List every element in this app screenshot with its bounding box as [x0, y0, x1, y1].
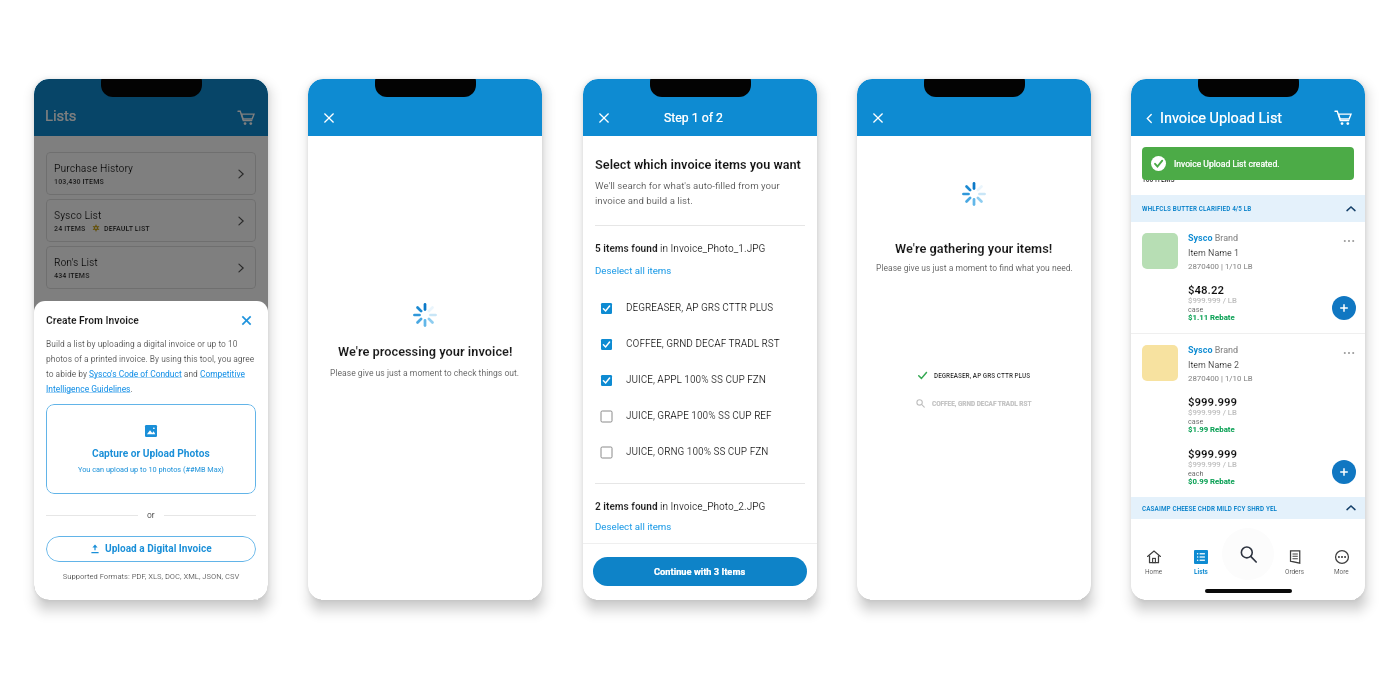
- staticText: COFFEE, GRND DECAF TRADL RST: [626, 338, 780, 350]
- staticText: 2870400 | 1/10 LB: [1188, 262, 1253, 271]
- staticText: $1.11 Rebate: [1188, 313, 1235, 322]
- staticText: 24 ITEMS: [54, 224, 86, 232]
- staticText: Item Name 1: [1188, 248, 1239, 258]
- staticText: 5 items found in Invoice_Photo_1.JPG: [595, 243, 766, 255]
- button[interactable]: Cart: [235, 107, 257, 129]
- button[interactable]: JUICE, ORNG 100% SS CUP FZN: [595, 434, 805, 470]
- staticText: Upload a Digital Invoice: [105, 543, 212, 555]
- button[interactable]: Add to cart: [1332, 296, 1356, 320]
- button[interactable]: Ron's List: [46, 246, 256, 289]
- staticText: case: [1188, 417, 1204, 425]
- staticText: JUICE, APPL 100% SS CUP FZN: [626, 374, 766, 386]
- button[interactable]: Add to cart: [1332, 460, 1356, 484]
- staticText: COFFEE, GRND DECAF TRADL RST: [932, 400, 1032, 408]
- staticText: $999.999 / LB: [1188, 296, 1237, 305]
- button[interactable]: Close: [591, 105, 617, 131]
- staticText: 434 ITEMS: [54, 271, 90, 279]
- button[interactable]: Lists: [1177, 540, 1224, 586]
- staticText: DEGREASER, AP GRS CTTR PLUS: [626, 302, 774, 314]
- button[interactable]: Sysco Brand: [1131, 334, 1365, 497]
- button[interactable]: Orders: [1271, 540, 1318, 586]
- staticText: Lists: [45, 107, 77, 124]
- staticText: Invoice Upload List: [1160, 110, 1283, 127]
- staticText: $999.999 / LB: [1188, 460, 1237, 469]
- button[interactable]: Search: [1222, 528, 1274, 580]
- staticText: case: [1188, 305, 1204, 313]
- staticText: Step 1 of 2: [664, 111, 724, 125]
- staticText: Orders: [1285, 568, 1304, 576]
- staticText: each: [1188, 469, 1204, 477]
- staticText: Select which invoice items you want: [595, 157, 801, 172]
- staticText: 2 items found in Invoice_Photo_2.JPG: [595, 501, 766, 513]
- button[interactable]: Home: [1131, 540, 1177, 586]
- button[interactable]: DEGREASER, AP GRS CTTR PLUS: [595, 290, 805, 326]
- staticText: We'll search for what's auto-filled from…: [595, 180, 780, 206]
- staticText: Lists: [1194, 568, 1208, 576]
- staticText: Invoice Upload List created.: [1174, 159, 1280, 169]
- button[interactable]: Capture or Upload Photos: [46, 404, 256, 494]
- staticText: Ron's List: [54, 256, 98, 268]
- staticText: Home: [1145, 568, 1163, 576]
- staticText: WHLFCLS BUTTER CLARIFIED 4/5 LB: [1142, 205, 1252, 212]
- button[interactable]: Upload a Digital Invoice: [46, 536, 256, 562]
- staticText: Please give us just a moment to find wha…: [876, 263, 1073, 273]
- staticText: Capture or Upload Photos: [92, 448, 210, 460]
- button[interactable]: Purchase History: [46, 152, 256, 195]
- staticText: $0.99 Rebate: [1188, 477, 1235, 486]
- staticText: Create From Invoice: [46, 314, 236, 326]
- staticText: Sysco List: [54, 209, 102, 221]
- button[interactable]: More options: [1341, 233, 1357, 249]
- button[interactable]: Close: [865, 105, 891, 131]
- button[interactable]: COFFEE, GRND DECAF TRADL RST: [595, 326, 805, 362]
- staticText: Item Name 2: [1188, 360, 1239, 370]
- button[interactable]: CASAIMP CHEESE CHDR MILD FCY SHRD YEL: [1131, 497, 1365, 519]
- staticText: $999.999: [1188, 395, 1238, 408]
- staticText: or: [147, 510, 155, 520]
- staticText: Purchase History: [54, 162, 134, 174]
- staticText: DEFAULT LIST: [104, 224, 150, 232]
- staticText: You can upload up to 10 photos (##MB Max…: [78, 465, 224, 474]
- staticText: $999.999 / LB: [1188, 408, 1237, 417]
- button[interactable]: Close sheet: [236, 310, 256, 330]
- staticText: More: [1334, 568, 1349, 576]
- button[interactable]: WHLFCLS BUTTER CLARIFIED 4/5 LB: [1131, 195, 1365, 222]
- staticText: Continue with 3 Items: [654, 566, 746, 577]
- staticText: JUICE, GRAPE 100% SS CUP REF: [626, 410, 772, 422]
- button[interactable]: Close: [316, 105, 342, 131]
- staticText: DEGREASER, AP GRS CTTR PLUS: [934, 372, 1031, 380]
- button[interactable]: JUICE, APPL 100% SS CUP FZN: [595, 362, 805, 398]
- button[interactable]: Deselect all items: [595, 521, 672, 532]
- staticText: Build a list by uploading a digital invo…: [46, 339, 256, 394]
- staticText: We're gathering your items!: [895, 241, 1053, 256]
- button[interactable]: Continue with 3 Items: [593, 557, 807, 586]
- staticText: Please give us just a moment to check th…: [330, 368, 520, 378]
- button[interactable]: JUICE, GRAPE 100% SS CUP REF: [595, 398, 805, 434]
- staticText: Sysco Brand: [1188, 345, 1239, 356]
- button[interactable]: More options: [1341, 345, 1357, 361]
- button[interactable]: Back: [1140, 109, 1158, 127]
- staticText: 103,430 ITEMS: [54, 177, 104, 185]
- staticText: JUICE, ORNG 100% SS CUP FZN: [626, 446, 769, 458]
- button[interactable]: Sysco Brand: [1131, 222, 1365, 333]
- staticText: $48.22: [1188, 283, 1224, 296]
- button[interactable]: More: [1318, 540, 1365, 586]
- staticText: 100 ITEMS: [1142, 176, 1175, 184]
- staticText: $999.999: [1188, 447, 1238, 460]
- staticText: We're processing your invoice!: [338, 344, 513, 359]
- staticText: Supported Formats: PDF, XLS, DOC, XML, J…: [46, 572, 256, 581]
- staticText: 2870400 | 1/10 LB: [1188, 374, 1253, 383]
- button[interactable]: Deselect all items: [595, 265, 672, 276]
- staticText: CASAIMP CHEESE CHDR MILD FCY SHRD YEL: [1142, 505, 1278, 512]
- button[interactable]: Cart: [1332, 107, 1354, 129]
- staticText: $1.99 Rebate: [1188, 425, 1235, 434]
- button[interactable]: Sysco List: [46, 199, 256, 242]
- staticText: Sysco Brand: [1188, 233, 1239, 244]
